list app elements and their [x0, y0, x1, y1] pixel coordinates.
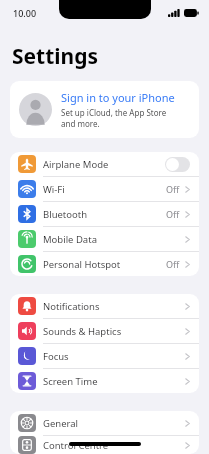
staticText: Bluetooth [43, 208, 88, 221]
staticText: Sign in to your iPhone [61, 90, 175, 105]
staticText: 10.00 [13, 7, 37, 19]
staticText: Off [166, 258, 180, 270]
staticText: Focus [43, 350, 69, 363]
button[interactable]: Focus [10, 344, 199, 368]
staticText: Off [166, 183, 180, 195]
staticText: Wi-Fi [43, 183, 65, 196]
button[interactable]: Airplane Mode [10, 152, 199, 176]
button[interactable]: General [10, 411, 199, 435]
staticText: Mobile Data [43, 233, 97, 246]
staticText: Screen Time [43, 375, 98, 388]
staticText: Sounds & Haptics [43, 325, 122, 338]
staticText: Set up iCloud, the App Store [61, 107, 167, 118]
staticText: Personal Hotspot [43, 258, 121, 271]
button[interactable]: Notifications [10, 294, 199, 318]
staticText: and more. [61, 118, 100, 129]
staticText: Notifications [43, 300, 100, 313]
button[interactable]: Mobile Data [10, 227, 199, 251]
button[interactable]: Wi-Fi [10, 177, 199, 201]
button[interactable]: Airplane Mode toggle [165, 157, 190, 172]
button[interactable]: Personal Hotspot [10, 252, 199, 276]
button[interactable]: Sign in to your iPhone [10, 81, 199, 138]
button[interactable]: Sounds & Haptics [10, 319, 199, 343]
button[interactable]: Bluetooth [10, 202, 199, 226]
staticText: Airplane Mode [43, 158, 109, 171]
staticText: Settings [12, 42, 99, 71]
staticText: General [43, 417, 79, 430]
staticText: Control Centre [43, 439, 109, 452]
button[interactable]: Screen Time [10, 369, 199, 393]
button[interactable]: Control Centre [10, 436, 199, 454]
staticText: Off [166, 208, 180, 220]
